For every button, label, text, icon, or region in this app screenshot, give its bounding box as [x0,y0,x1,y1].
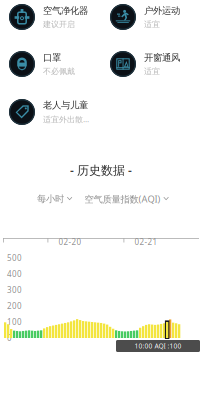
staticText: 100 [7,317,22,327]
staticText: 200 [7,301,22,311]
staticText: 空气质量指数(AQI) [84,193,160,205]
button[interactable]: 空气净化器 [0,0,101,37]
staticText: 0 [7,333,12,343]
staticText: - 历史数据 - [70,162,132,178]
staticText: 02-20 [58,237,81,247]
staticText: 老人与儿童 [43,99,88,111]
staticText: 不必佩戴 [43,66,75,76]
staticText: 500 [7,253,22,263]
staticText: 适宜 [144,19,160,29]
button[interactable]: 每小时 [33,190,77,208]
staticText: 口罩 [43,52,61,63]
button[interactable]: 口罩 [0,44,101,84]
staticText: 02-21 [134,237,157,247]
staticText: 每小时 [37,193,64,205]
staticText: 户外运动 [144,5,180,16]
button[interactable]: 老人与儿童 [0,92,101,132]
button[interactable]: 开窗通风 [101,44,202,84]
staticText: 400 [7,269,22,279]
staticText: 300 [7,285,22,295]
staticText: 开窗通风 [144,52,180,63]
staticText: 空气净化器 [43,5,88,16]
button[interactable]: 空气质量指数(AQI) [80,190,173,208]
staticText: 建议开启 [43,19,75,29]
staticText: 适宜外出散... [43,114,89,124]
staticText: 10:00 AQI :100 [134,342,181,350]
button[interactable]: 户外运动 [101,0,202,37]
staticText: 适宜 [144,66,160,76]
